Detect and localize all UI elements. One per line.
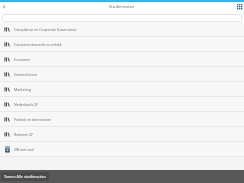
staticText: Marketing (14, 87, 31, 92)
button[interactable]: SW met veel (0, 142, 244, 156)
button[interactable]: Nederlands 2F (0, 97, 244, 111)
button[interactable]: Apps (233, 2, 244, 12)
staticText: Gezond Leven (14, 72, 38, 77)
staticText: Tonen: Alle studieroutes (4, 174, 46, 179)
button[interactable] (2, 14, 242, 22)
staticText: SW met veel (14, 147, 35, 152)
button[interactable]: Marketing (0, 82, 244, 96)
button[interactable]: Politiek en democratie (0, 112, 244, 126)
staticText: Compliance en Corporate Governance (14, 27, 77, 32)
staticText: Economie (14, 57, 31, 62)
staticText: Studieroutes (109, 4, 135, 10)
button[interactable]: Tonen: Alle studieroutes (1, 172, 49, 181)
button[interactable]: Rekenen 2F (0, 127, 244, 141)
button[interactable]: Gezond Leven (0, 67, 244, 81)
staticText: Politiek en democratie (14, 117, 51, 122)
button[interactable]: Economie (0, 52, 244, 66)
staticText: Rekenen 2F (14, 132, 34, 137)
staticText: Consumentenrecht en ethiek (14, 42, 62, 47)
button[interactable]: Back (0, 2, 9, 12)
staticText: Nederlands 2F (14, 102, 38, 107)
button[interactable]: Consumentenrecht en ethiek (0, 37, 244, 51)
button[interactable]: Compliance en Corporate Governance (0, 22, 244, 36)
